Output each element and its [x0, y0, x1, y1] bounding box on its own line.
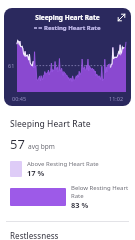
staticText: Resting Heart Rate	[44, 24, 101, 32]
staticText: 11:02	[109, 95, 124, 102]
button[interactable]: Below Resting Heart Rate	[0, 184, 135, 210]
staticText: 61	[8, 62, 15, 69]
staticText: Below Resting Heart Rate	[71, 184, 135, 200]
staticText: 57	[10, 135, 25, 153]
button[interactable]: Sleeping Heart Rate	[4, 8, 131, 106]
staticText: Restlessness	[10, 230, 59, 240]
staticText: Sleeping Heart Rate	[4, 13, 131, 22]
staticText: 17 %	[27, 168, 45, 178]
staticText: avg bpm	[28, 142, 55, 151]
staticText: Sleeping Heart Rate	[10, 118, 91, 130]
staticText: 83 %	[71, 200, 89, 210]
button[interactable]: Expand chart	[116, 12, 127, 23]
button[interactable]: Above Resting Heart Rate	[0, 160, 135, 178]
staticText: Above Resting Heart Rate	[27, 160, 99, 168]
staticText: 00:45	[12, 95, 27, 102]
